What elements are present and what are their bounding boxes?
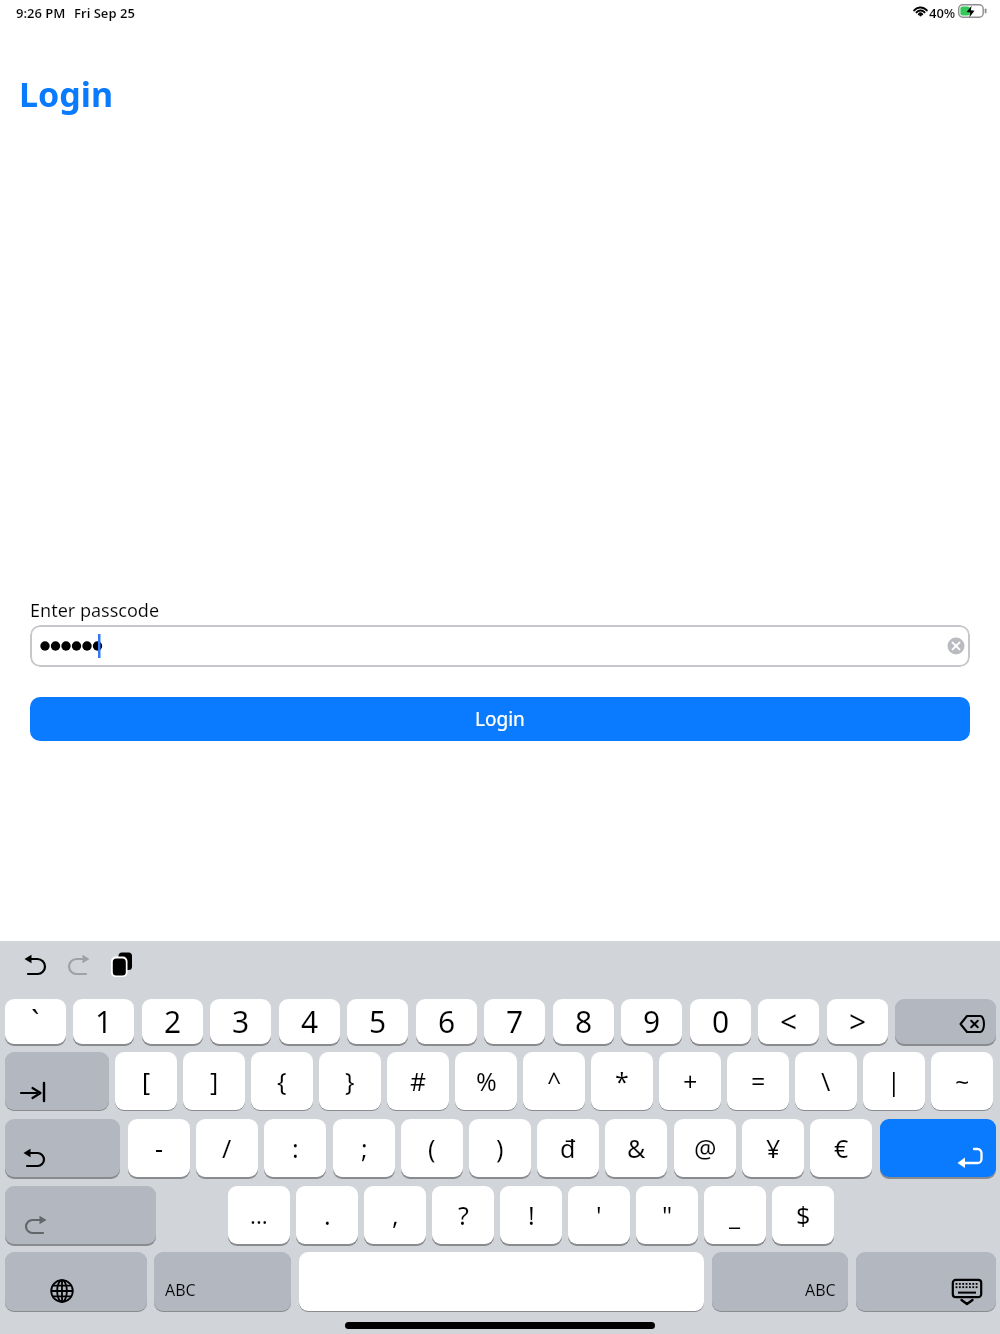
- button[interactable]: [: [115, 1052, 177, 1110]
- staticText: [: [142, 1064, 151, 1098]
- button[interactable]: 7: [484, 999, 545, 1044]
- button[interactable]: ': [568, 1186, 630, 1244]
- button[interactable]: <: [758, 999, 819, 1044]
- staticText: @: [694, 1131, 717, 1165]
- button[interactable]: $: [772, 1186, 834, 1244]
- staticText: |: [887, 1064, 901, 1098]
- button[interactable]: ^: [523, 1052, 585, 1110]
- button[interactable]: [110, 952, 136, 980]
- button[interactable]: [30, 625, 970, 667]
- button[interactable]: [856, 1252, 996, 1311]
- button[interactable]: ,: [364, 1186, 426, 1244]
- button[interactable]: 9: [621, 999, 682, 1044]
- button[interactable]: }: [319, 1052, 381, 1110]
- staticText: >: [849, 1001, 867, 1042]
- staticText: đ: [560, 1131, 576, 1165]
- button[interactable]: 4: [279, 999, 340, 1044]
- button[interactable]: !: [500, 1186, 562, 1244]
- staticText: \: [821, 1064, 831, 1098]
- button[interactable]: ~: [931, 1052, 993, 1110]
- button[interactable]: 0: [690, 999, 751, 1044]
- button[interactable]: [5, 1052, 109, 1110]
- staticText: Login: [19, 71, 114, 117]
- button[interactable]: -: [128, 1119, 190, 1177]
- staticText: :: [292, 1131, 299, 1165]
- button[interactable]: đ: [537, 1119, 599, 1177]
- button[interactable]: [24, 955, 48, 977]
- staticText: ": [662, 1198, 673, 1232]
- staticText: Enter passcode: [30, 598, 160, 623]
- button[interactable]: .: [296, 1186, 358, 1244]
- button[interactable]: ...: [228, 1186, 290, 1244]
- staticText: ): [496, 1131, 504, 1165]
- staticText: -: [155, 1131, 164, 1165]
- button[interactable]: 2: [142, 999, 203, 1044]
- button[interactable]: _: [704, 1186, 766, 1244]
- staticText: 0: [712, 1001, 730, 1042]
- button[interactable]: 8: [553, 999, 614, 1044]
- staticText: .: [324, 1198, 331, 1232]
- button[interactable]: ]: [183, 1052, 245, 1110]
- button[interactable]: ;: [333, 1119, 395, 1177]
- staticText: 2: [164, 1001, 182, 1042]
- button[interactable]: €: [810, 1119, 872, 1177]
- staticText: ]: [210, 1064, 219, 1098]
- button[interactable]: [880, 1119, 996, 1177]
- staticText: /: [222, 1131, 232, 1165]
- button[interactable]: &: [605, 1119, 667, 1177]
- button[interactable]: ABC: [712, 1252, 848, 1311]
- staticText: ?: [458, 1198, 469, 1232]
- staticText: }: [345, 1064, 355, 1098]
- button[interactable]: ?: [432, 1186, 494, 1244]
- staticText: !: [528, 1198, 535, 1232]
- button[interactable]: =: [727, 1052, 789, 1110]
- button[interactable]: >: [827, 999, 888, 1044]
- staticText: *: [615, 1064, 629, 1098]
- button[interactable]: Login: [30, 697, 970, 741]
- button[interactable]: 5: [347, 999, 408, 1044]
- button[interactable]: ): [469, 1119, 531, 1177]
- staticText: €: [834, 1131, 849, 1165]
- button[interactable]: `: [5, 999, 66, 1044]
- button[interactable]: |: [863, 1052, 925, 1110]
- button[interactable]: @: [674, 1119, 736, 1177]
- staticText: 8: [575, 1001, 593, 1042]
- staticText: ;: [361, 1131, 368, 1165]
- staticText: 1: [95, 1001, 113, 1042]
- button[interactable]: +: [659, 1052, 721, 1110]
- button[interactable]: ABC: [154, 1252, 291, 1311]
- staticText: Fri Sep 25: [74, 4, 135, 22]
- staticText: ': [596, 1198, 602, 1232]
- staticText: <: [780, 1001, 798, 1042]
- button[interactable]: *: [591, 1052, 653, 1110]
- button[interactable]: 1: [73, 999, 134, 1044]
- staticText: 9: [643, 1001, 661, 1042]
- button[interactable]: [5, 1252, 147, 1311]
- staticText: %: [476, 1064, 497, 1098]
- button[interactable]: :: [264, 1119, 326, 1177]
- staticText: #: [410, 1064, 427, 1098]
- button[interactable]: [299, 1252, 704, 1311]
- staticText: 9:26 PM: [16, 4, 66, 22]
- button[interactable]: {: [251, 1052, 313, 1110]
- button[interactable]: \: [795, 1052, 857, 1110]
- button[interactable]: /: [196, 1119, 258, 1177]
- button[interactable]: 3: [210, 999, 271, 1044]
- staticText: _: [729, 1198, 741, 1232]
- staticText: (: [428, 1131, 436, 1165]
- button[interactable]: (: [401, 1119, 463, 1177]
- staticText: ...: [250, 1200, 268, 1230]
- button[interactable]: 6: [416, 999, 477, 1044]
- button[interactable]: [895, 999, 996, 1044]
- button[interactable]: [66, 955, 90, 977]
- staticText: ^: [547, 1064, 562, 1098]
- button[interactable]: [5, 1186, 156, 1244]
- button[interactable]: %: [455, 1052, 517, 1110]
- button[interactable]: #: [387, 1052, 449, 1110]
- staticText: 6: [438, 1001, 456, 1042]
- staticText: +: [683, 1064, 698, 1098]
- button[interactable]: [5, 1119, 120, 1177]
- button[interactable]: ¥: [742, 1119, 804, 1177]
- button[interactable]: ": [636, 1186, 698, 1244]
- staticText: 7: [506, 1001, 524, 1042]
